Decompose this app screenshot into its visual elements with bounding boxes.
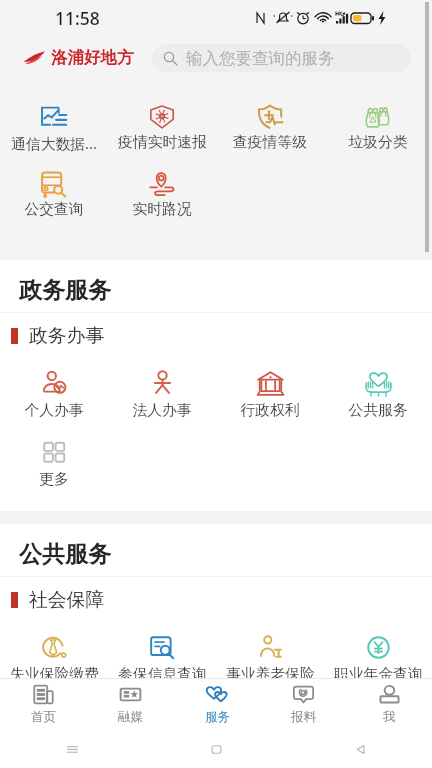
- staticText: 政务办事: [29, 324, 105, 348]
- staticText: 公共服务: [348, 401, 408, 420]
- button[interactable]: 实时路况: [108, 171, 216, 219]
- staticText: 行政权利: [240, 401, 300, 420]
- staticText: 职业年金查询: [334, 665, 423, 684]
- staticText: 我: [383, 709, 396, 725]
- button[interactable]: 首页: [0, 679, 87, 730]
- button[interactable]: 服务: [174, 679, 260, 730]
- button[interactable]: Home: [144, 730, 288, 768]
- staticText: 服务: [205, 709, 230, 725]
- staticText: 输入您要查询的服务: [186, 48, 335, 69]
- staticText: 首页: [31, 709, 56, 725]
- staticText: 公交查询: [24, 200, 84, 219]
- staticText: 公共服务: [19, 540, 111, 569]
- button[interactable]: Recents: [0, 730, 144, 768]
- button[interactable]: 公共服务: [324, 370, 432, 420]
- button[interactable]: 我: [346, 679, 432, 730]
- staticText: 垃圾分类: [348, 133, 408, 152]
- staticText: 疫情实时速报: [118, 133, 207, 152]
- staticText: 更多: [39, 470, 69, 489]
- staticText: 融媒: [118, 709, 143, 725]
- staticText: 法人办事: [132, 401, 192, 420]
- button[interactable]: 更多: [0, 439, 108, 489]
- button[interactable]: 通信大数据...: [0, 104, 108, 153]
- button[interactable]: 事业养老保险: [216, 634, 324, 684]
- other: Logo: [23, 50, 45, 65]
- staticText: 政务服务: [19, 276, 111, 305]
- staticText: 参保信息查询: [118, 665, 207, 684]
- staticText: 社会保障: [29, 588, 105, 612]
- button[interactable]: 行政权利: [216, 370, 324, 420]
- staticText: 11:58: [55, 6, 100, 30]
- staticText: 实时路况: [132, 200, 192, 219]
- button[interactable]: 个人办事: [0, 370, 108, 420]
- button[interactable]: 疫情实时速报: [108, 104, 216, 152]
- button[interactable]: 垃圾分类: [324, 104, 432, 152]
- staticText: 洛浦好地方: [51, 47, 134, 68]
- button[interactable]: 公交查询: [0, 171, 108, 219]
- button[interactable]: 查疫情等级: [216, 104, 324, 152]
- staticText: 事业养老保险: [226, 665, 315, 684]
- staticText: 查疫情等级: [233, 133, 307, 152]
- button[interactable]: 报料: [260, 679, 346, 730]
- button[interactable]: 职业年金查询: [324, 634, 432, 684]
- staticText: 通信大数据...: [11, 133, 97, 153]
- button[interactable]: 失业保险缴费: [0, 634, 108, 684]
- button[interactable]: 法人办事: [108, 370, 216, 420]
- button[interactable]: 融媒: [87, 679, 174, 730]
- staticText: 失业保险缴费: [10, 665, 99, 684]
- button[interactable]: Back: [288, 730, 432, 768]
- button[interactable]: 参保信息查询: [108, 634, 216, 684]
- button[interactable]: 输入您要查询的服务: [152, 44, 411, 72]
- staticText: 报料: [291, 709, 316, 725]
- staticText: 个人办事: [24, 401, 84, 420]
